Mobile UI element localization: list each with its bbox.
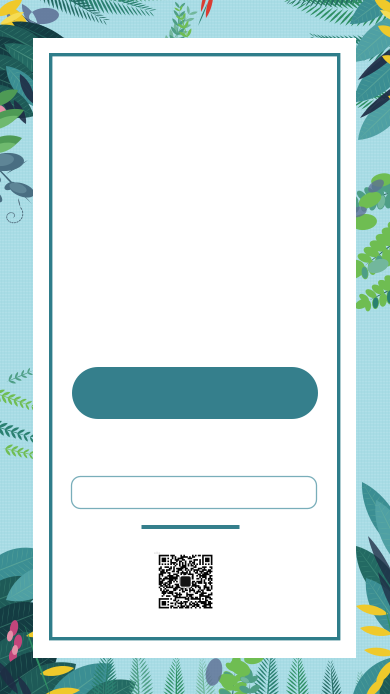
button[interactable]: [72, 367, 318, 419]
button[interactable]: [71, 476, 316, 508]
